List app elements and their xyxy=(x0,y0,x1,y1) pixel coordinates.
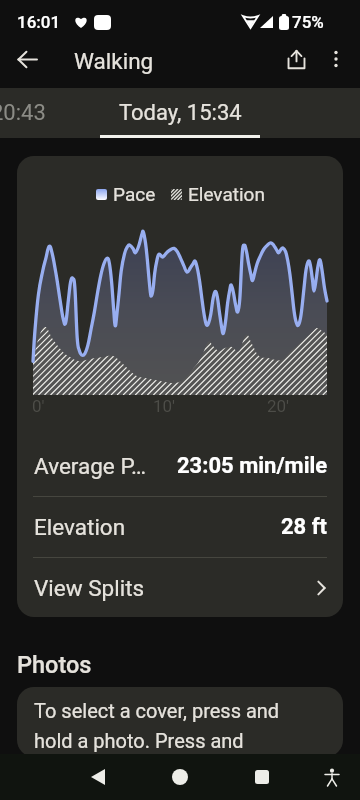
button[interactable]: View Splits xyxy=(17,558,343,617)
staticText: 75% xyxy=(292,12,324,32)
button[interactable]: Accessibility xyxy=(308,754,356,800)
button[interactable]: Share xyxy=(276,39,316,79)
button[interactable]: Today, 15:34 xyxy=(100,88,260,138)
staticText: Elevation xyxy=(34,514,126,540)
button[interactable]: More options xyxy=(316,39,356,79)
staticText: Photos xyxy=(17,651,92,679)
button[interactable]: 20:43 xyxy=(0,88,98,138)
staticText: 16:01 xyxy=(17,12,61,32)
staticText: View Splits xyxy=(34,575,145,601)
staticText: Elevation xyxy=(188,183,265,205)
staticText: Average P… xyxy=(34,453,147,479)
button[interactable]: Recent apps xyxy=(238,754,286,800)
staticText: 10' xyxy=(153,396,176,416)
staticText: 20' xyxy=(267,396,290,416)
staticText: To select a cover, press and hold a phot… xyxy=(34,699,280,753)
staticText: 28 ft xyxy=(281,514,328,540)
button[interactable]: Back xyxy=(7,39,47,79)
button[interactable]: Average P… xyxy=(17,436,343,496)
button[interactable]: Back xyxy=(74,754,122,800)
staticText: 20:43 xyxy=(0,100,46,126)
staticText: 23:05 min/mile xyxy=(177,453,328,479)
button[interactable]: Elevation xyxy=(17,497,343,557)
staticText: Walking xyxy=(74,48,154,74)
button[interactable]: Home xyxy=(156,754,204,800)
staticText: Today, 15:34 xyxy=(119,100,242,126)
staticText: Pace xyxy=(113,183,156,205)
button[interactable]: To select a cover, press and hold a phot… xyxy=(17,687,343,757)
staticText: 0' xyxy=(32,396,45,416)
